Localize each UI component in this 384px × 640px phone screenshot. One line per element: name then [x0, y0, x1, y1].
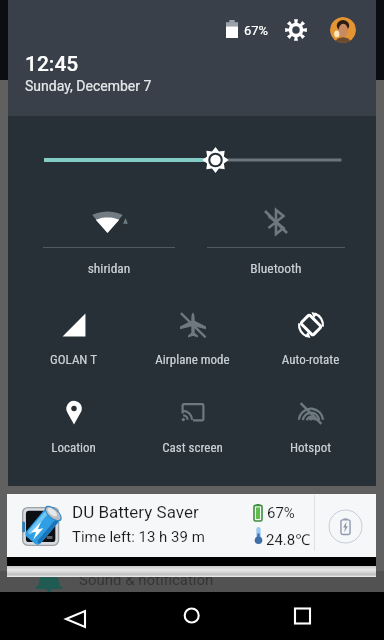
button[interactable]: User profile [330, 17, 356, 43]
staticText: shiridan [29, 260, 189, 276]
staticText: GOLAN T [14, 352, 133, 367]
staticText: 12:45 [25, 52, 79, 77]
staticText: Cast screen [133, 440, 252, 455]
button[interactable]: Location [14, 386, 133, 474]
button[interactable]: Hotspot [251, 386, 370, 474]
staticText: Sound & notification [79, 571, 214, 589]
button[interactable]: Auto-rotate [251, 298, 370, 386]
staticText: 67% [267, 504, 295, 522]
button[interactable]: Settings [284, 18, 308, 42]
button[interactable]: Cast screen [133, 386, 252, 474]
button[interactable]: Back [64, 604, 88, 628]
staticText: Airplane mode [133, 352, 252, 367]
button[interactable] [8, 134, 376, 186]
staticText: Hotspot [251, 440, 370, 455]
button[interactable]: DU Battery Saver [7, 494, 376, 557]
staticText: 24.8℃ [266, 529, 311, 549]
staticText: Location [14, 440, 133, 455]
staticText: Bluetooth [196, 260, 356, 276]
button[interactable]: Home [180, 604, 204, 628]
button[interactable]: Recent apps [290, 604, 314, 628]
staticText: Auto-rotate [251, 352, 370, 367]
button[interactable]: Airplane mode [133, 298, 252, 386]
button[interactable]: Bluetooth [196, 196, 356, 284]
button[interactable]: GOLAN T [14, 298, 133, 386]
button[interactable]: shiridan [29, 196, 189, 284]
staticText: Sunday, December 7 [25, 78, 152, 94]
button[interactable]: Optimize battery [328, 509, 363, 544]
staticText: DU Battery Saver [72, 502, 199, 522]
staticText: 67% [244, 23, 269, 38]
staticText: Time left: 13 h 39 m [72, 528, 205, 546]
